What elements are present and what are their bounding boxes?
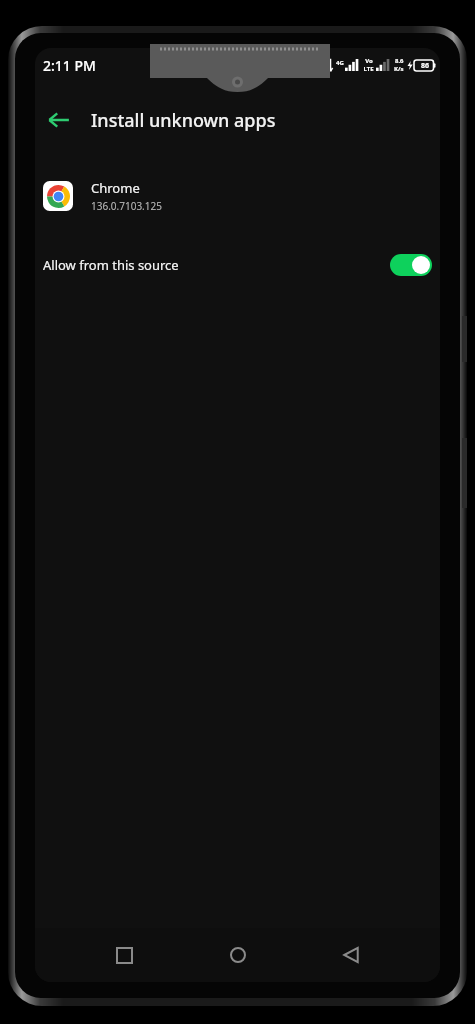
staticText: 136.0.7103.125 [91, 199, 162, 213]
button[interactable]: Allow from this source toggle [390, 254, 432, 276]
staticText: Chrome [91, 179, 140, 197]
staticText: 4G [336, 59, 344, 67]
button[interactable]: Home [214, 931, 262, 979]
button[interactable]: Back [327, 931, 375, 979]
staticText: LTE [363, 65, 374, 73]
staticText: Install unknown apps [91, 108, 276, 133]
staticText: Allow from this source [43, 256, 179, 274]
button[interactable]: Back [39, 100, 79, 140]
button[interactable]: Recent apps [100, 931, 148, 979]
staticText: Vo [365, 57, 373, 65]
staticText: 86 [421, 61, 430, 71]
button[interactable]: Chrome [35, 170, 440, 222]
staticText: K/s [394, 65, 404, 73]
staticText: 2:11 PM [43, 56, 96, 75]
button[interactable]: Allow from this source [35, 244, 440, 286]
staticText: 8.6 [395, 57, 404, 65]
